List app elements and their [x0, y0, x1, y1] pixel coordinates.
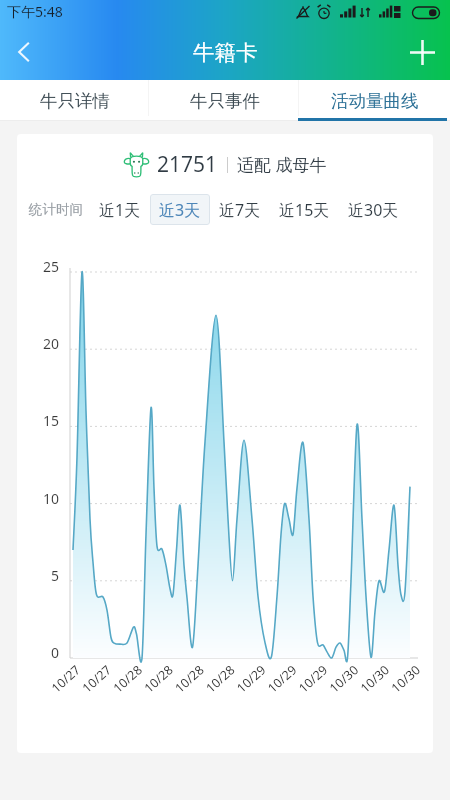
button[interactable]: 牛只详情: [0, 80, 150, 121]
staticText: 5: [34, 566, 59, 585]
button[interactable]: Back: [0, 28, 48, 76]
staticText: 近3天: [159, 199, 201, 221]
staticText: 10: [34, 489, 59, 508]
staticText: 近30天: [348, 199, 399, 221]
button[interactable]: 近15天: [270, 194, 339, 225]
staticText: 牛只详情: [40, 90, 110, 112]
staticText: 15: [34, 411, 59, 430]
staticText: 25: [34, 257, 59, 276]
button[interactable]: 近30天: [339, 194, 408, 225]
staticText: 牛只事件: [190, 90, 260, 112]
staticText: 20: [34, 334, 59, 353]
staticText: 活动量曲线: [331, 90, 419, 112]
staticText: 0: [34, 643, 59, 662]
button[interactable]: 近7天: [210, 194, 270, 225]
staticText: 21751: [157, 150, 218, 179]
button[interactable]: 牛只事件: [150, 80, 300, 121]
staticText: 适配 成母牛: [237, 153, 327, 176]
button[interactable]: 近1天: [90, 194, 150, 225]
staticText: 统计时间: [29, 201, 83, 218]
button[interactable]: Add: [394, 24, 450, 80]
staticText: 近15天: [279, 199, 330, 221]
staticText: 下午5:48: [7, 2, 63, 21]
staticText: 近7天: [219, 199, 261, 221]
staticText: 近1天: [99, 199, 141, 221]
button[interactable]: 近3天: [150, 194, 210, 225]
button[interactable]: 活动量曲线: [300, 80, 450, 121]
staticText: 牛籍卡: [193, 39, 258, 66]
